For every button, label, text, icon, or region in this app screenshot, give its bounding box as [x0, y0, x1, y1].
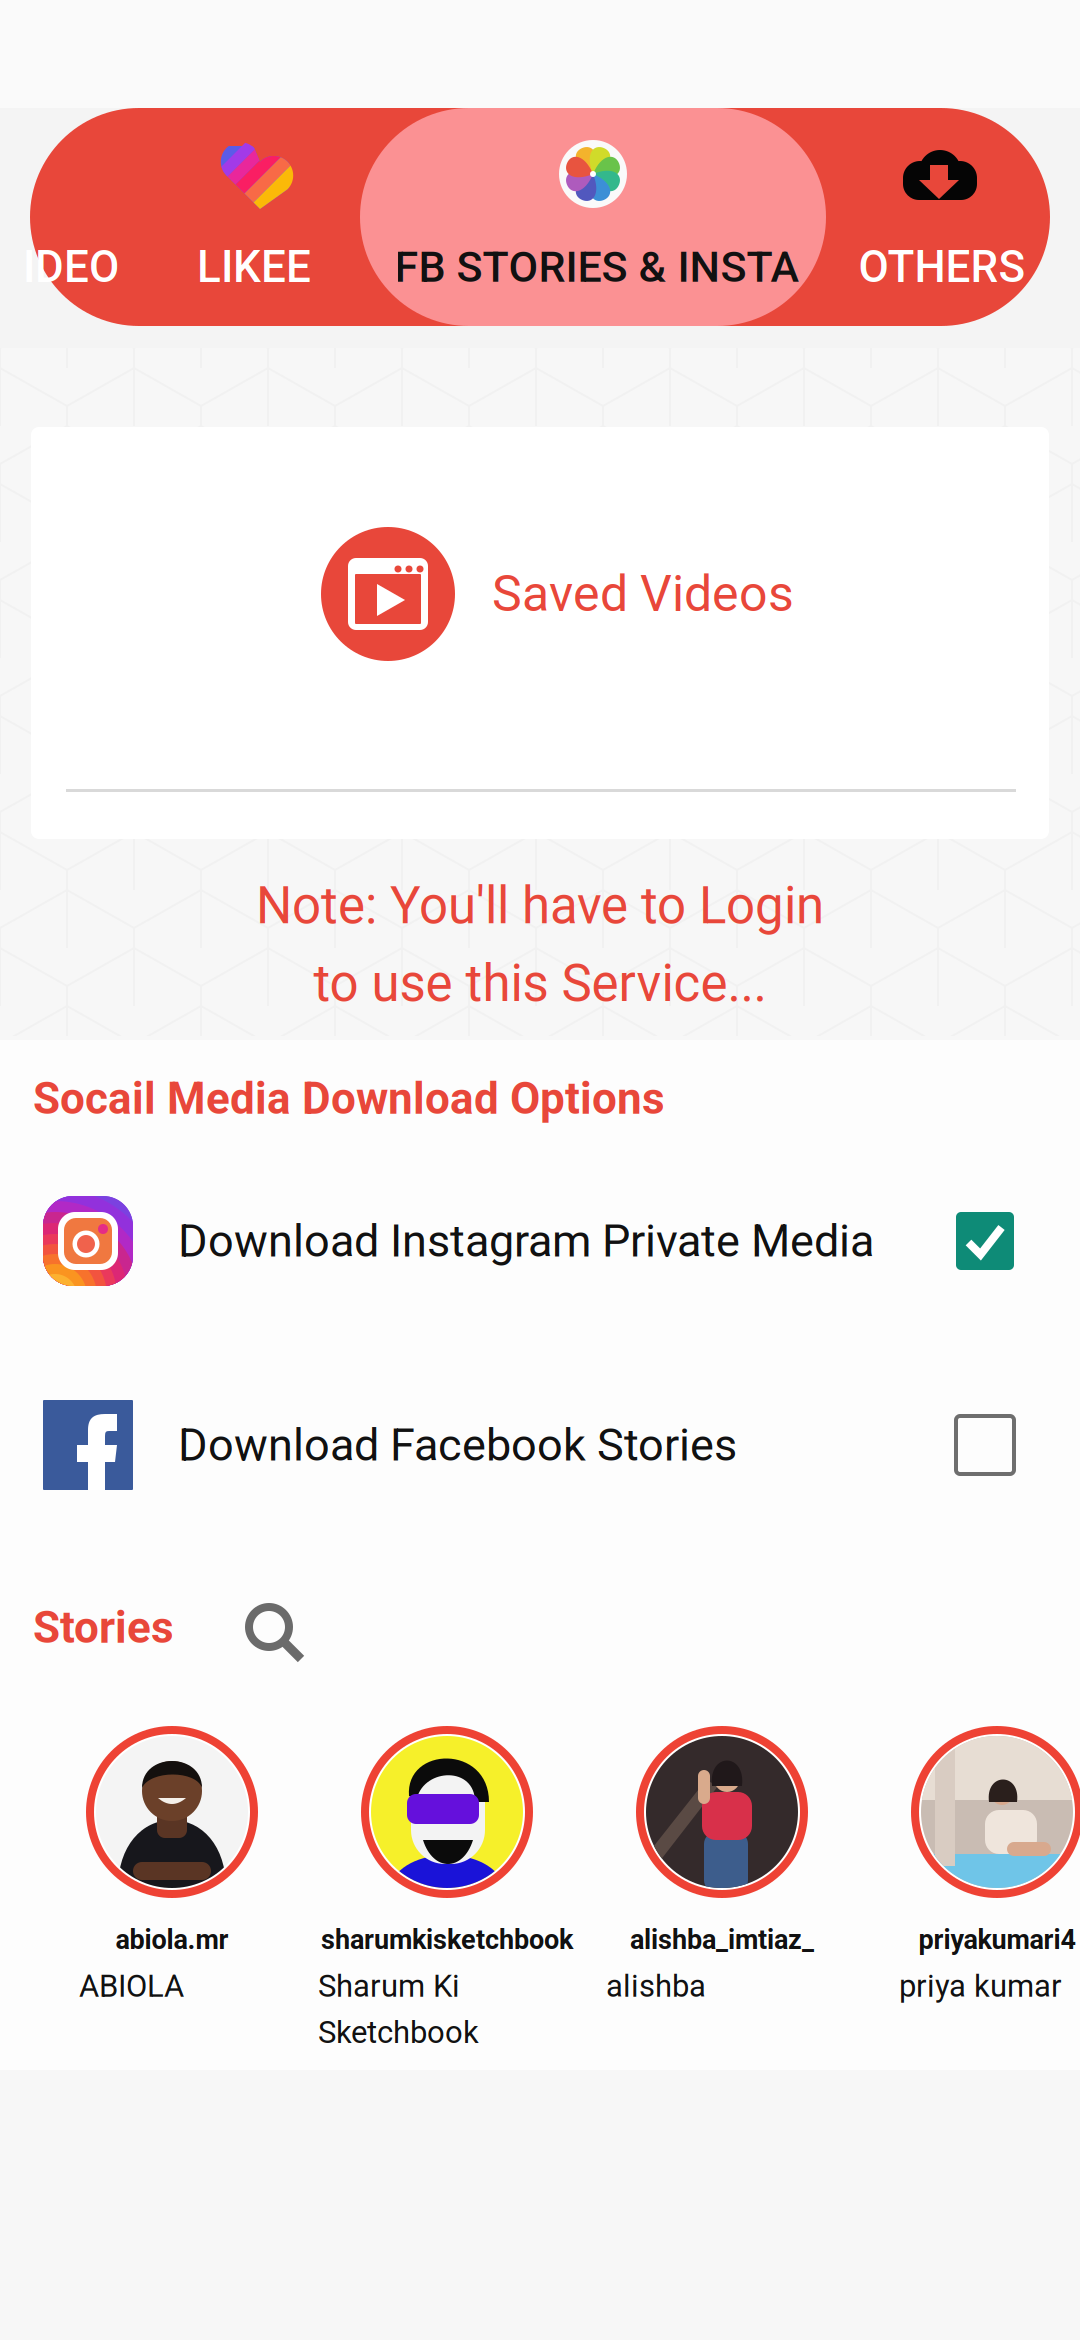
button[interactable]: FB STORIES & INSTA	[364, 231, 830, 303]
staticText: FB STORIES & INSTA	[394, 242, 799, 292]
button[interactable]: alishba_imtiaz_	[636, 1726, 911, 2016]
button[interactable]: Download Facebook Stories	[0, 1400, 1080, 1490]
staticText: Sharum Ki	[318, 1968, 460, 2004]
button[interactable]: LIKEE	[149, 231, 359, 303]
staticText: sharumkisketchbook	[321, 1924, 573, 1956]
button[interactable]: abiola.mr	[86, 1726, 361, 2016]
staticText: ABIOLA	[79, 1968, 184, 2004]
button[interactable]: Search	[249, 1607, 307, 1665]
staticText: abiola.mr	[115, 1924, 228, 1956]
staticText: Download Facebook Stories	[178, 1419, 737, 1471]
button[interactable]: IDEO	[0, 231, 146, 303]
button[interactable]: priyakumari4	[911, 1726, 1080, 2016]
button[interactable]: OTHERS	[830, 231, 1054, 303]
staticText: OTHERS	[858, 241, 1025, 293]
staticText: LIKEE	[197, 241, 311, 293]
staticText: priya kumar	[899, 1968, 1062, 2004]
staticText: IDEO	[23, 241, 119, 293]
staticText: to use this Service...	[313, 954, 766, 1014]
staticText: priyakumari4	[918, 1924, 1075, 1956]
staticText: alishba	[606, 1968, 706, 2004]
button[interactable]: sharumkisketchbook	[361, 1726, 636, 2016]
staticText: Sketchbook	[318, 2014, 479, 2051]
staticText: Download Instagram Private Media	[178, 1215, 874, 1267]
staticText: Socail Media Download Options	[33, 1073, 665, 1125]
button[interactable]: Saved Videos	[31, 427, 1049, 792]
staticText: Stories	[33, 1602, 174, 1654]
button[interactable]: Download Instagram Private Media	[0, 1196, 1080, 1286]
staticText: Note: You'll have to Login	[256, 876, 824, 936]
staticText: alishba_imtiaz_	[630, 1924, 814, 1956]
staticText: Saved Videos	[492, 565, 794, 623]
